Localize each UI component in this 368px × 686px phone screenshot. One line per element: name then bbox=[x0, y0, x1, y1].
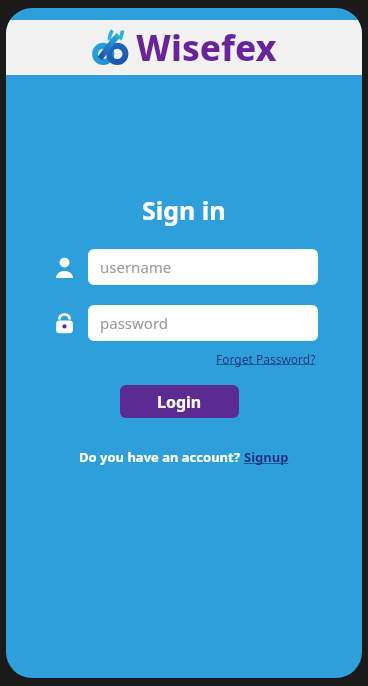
staticText: Forget Password? bbox=[216, 351, 316, 367]
button[interactable]: Forget Password? bbox=[214, 349, 318, 369]
staticText: Wisefex bbox=[136, 24, 277, 72]
button[interactable]: Do you have an account? bbox=[75, 444, 293, 470]
staticText: Signup bbox=[244, 448, 289, 466]
staticText: password bbox=[100, 313, 168, 333]
staticText: Login bbox=[157, 391, 202, 413]
other: Wisefex logo bbox=[92, 29, 130, 67]
other: Username bbox=[54, 257, 75, 278]
button[interactable]: username bbox=[88, 249, 318, 285]
other: Password bbox=[54, 313, 75, 334]
staticText: Do you have an account? bbox=[79, 448, 244, 466]
button[interactable]: password bbox=[88, 305, 318, 341]
button[interactable]: Login bbox=[120, 385, 239, 418]
staticText: username bbox=[100, 257, 172, 277]
staticText: Sign in bbox=[142, 193, 226, 227]
